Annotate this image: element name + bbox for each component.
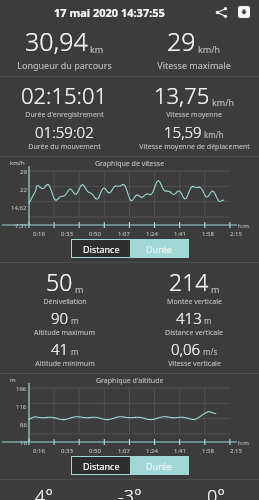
button[interactable]: Durée xyxy=(130,457,188,474)
staticText: 0:16 xyxy=(33,447,45,455)
staticText: Vitesse verticale xyxy=(168,359,221,369)
staticText: 4° xyxy=(35,484,53,500)
staticText: m xyxy=(71,346,79,357)
staticText: m xyxy=(204,315,212,326)
staticText: 0:50 xyxy=(89,230,101,238)
staticText: 2:15 xyxy=(230,447,242,455)
staticText: 1:41 xyxy=(174,447,186,455)
staticText: 116 xyxy=(16,403,27,411)
staticText: km/h xyxy=(198,43,221,55)
staticText: m xyxy=(75,283,84,295)
staticText: 66 xyxy=(20,421,27,429)
staticText: Graphique d'altitude xyxy=(96,376,164,386)
staticText: 1:41 xyxy=(174,230,186,238)
staticText: 1:24 xyxy=(146,447,158,455)
staticText: 1:07 xyxy=(118,447,130,455)
staticText: Altitude minimum xyxy=(35,359,95,369)
staticText: 214 xyxy=(169,266,209,297)
staticText: Altitude maximum xyxy=(34,328,95,338)
staticText: 41 xyxy=(51,339,69,359)
staticText: 0,06 xyxy=(171,339,201,359)
staticText: 1:58 xyxy=(202,230,214,238)
staticText: km/h xyxy=(204,129,224,140)
staticText: 16 xyxy=(20,439,27,447)
staticText: Montée verticale xyxy=(167,297,222,307)
staticText: h:m xyxy=(238,222,249,230)
staticText: 166 xyxy=(16,385,27,393)
staticText: Durée xyxy=(146,243,172,255)
staticText: -3° xyxy=(118,484,142,500)
staticText: 02:15:01 xyxy=(21,80,108,110)
staticText: 0:16 xyxy=(33,230,45,238)
staticText: Distance verticale xyxy=(165,328,223,338)
staticText: 90 xyxy=(51,308,69,328)
staticText: Graphique de vitesse xyxy=(95,159,165,169)
staticText: 17 mai 2020 14:37:55 xyxy=(54,5,165,20)
staticText: Durée xyxy=(146,460,172,472)
staticText: 7,31 xyxy=(15,222,27,230)
staticText: 22 xyxy=(20,186,27,194)
button[interactable]: Durée xyxy=(130,240,188,257)
staticText: 0° xyxy=(207,484,225,500)
staticText: m xyxy=(71,315,79,326)
staticText: 0:33 xyxy=(61,230,73,238)
staticText: 29 xyxy=(20,168,27,176)
staticText: 1:24 xyxy=(146,230,158,238)
button[interactable]: Distance xyxy=(72,240,130,257)
staticText: 2:15 xyxy=(230,230,242,238)
staticText: km/h xyxy=(212,96,235,108)
staticText: 1:58 xyxy=(202,447,214,455)
staticText: 29 xyxy=(167,24,196,58)
staticText: 1:07 xyxy=(118,230,130,238)
staticText: Vitesse maximale xyxy=(157,59,231,71)
staticText: km xyxy=(90,43,104,55)
button[interactable]: Distance xyxy=(72,457,130,474)
staticText: 30,94 xyxy=(25,24,88,58)
staticText: m xyxy=(10,376,16,384)
staticText: Vitesse moyenne de déplacement xyxy=(139,142,250,152)
staticText: Distance xyxy=(83,243,120,255)
button[interactable]: Save xyxy=(234,2,254,22)
staticText: 13,75 xyxy=(154,80,210,110)
staticText: Durée du mouvement xyxy=(28,142,101,152)
staticText: 0:50 xyxy=(89,447,101,455)
button[interactable]: Share xyxy=(211,2,231,22)
staticText: km/h xyxy=(10,159,25,167)
staticText: m xyxy=(211,283,220,295)
staticText: Longueur du parcours xyxy=(17,59,112,71)
staticText: Distance xyxy=(83,460,120,472)
staticText: 14,62 xyxy=(11,204,27,212)
staticText: Dénivellation xyxy=(43,297,87,307)
staticText: Vitesse moyenne xyxy=(166,110,222,120)
staticText: 15,59 xyxy=(164,122,202,142)
staticText: h:m xyxy=(238,439,249,447)
staticText: 50 xyxy=(46,266,73,297)
staticText: m/s xyxy=(203,346,218,357)
staticText: 0:33 xyxy=(61,447,73,455)
staticText: 413 xyxy=(176,308,202,328)
staticText: 01:59:02 xyxy=(35,122,94,142)
staticText: Durée d'enregistrement xyxy=(25,110,104,120)
